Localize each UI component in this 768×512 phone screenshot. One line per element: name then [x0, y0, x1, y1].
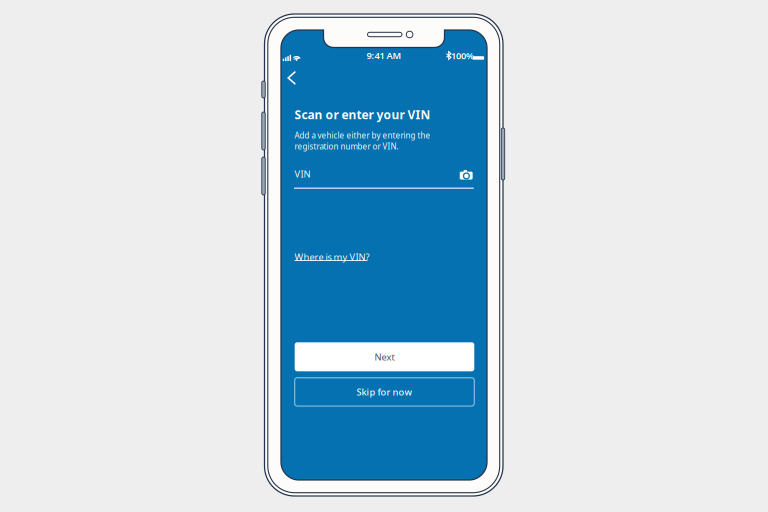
staticText: 9:41 AM — [366, 49, 401, 62]
button[interactable]: Scan VIN with camera — [0, 0, 768, 512]
staticText: Where is my VIN? — [294, 251, 369, 263]
button[interactable]: Where is my VIN? — [0, 0, 768, 512]
staticText: VIN — [294, 168, 310, 180]
button[interactable]: Back — [0, 0, 768, 512]
staticText: 100% — [451, 49, 474, 62]
button[interactable]: Next — [0, 0, 768, 512]
staticText: Skip for now — [356, 386, 412, 398]
staticText: Next — [374, 351, 394, 363]
staticText: Scan or enter your VIN — [294, 106, 430, 122]
staticText: registration number or VIN. — [294, 141, 398, 152]
button[interactable]: Skip for now — [0, 0, 768, 512]
staticText: Add a vehicle either by entering the — [294, 130, 430, 141]
